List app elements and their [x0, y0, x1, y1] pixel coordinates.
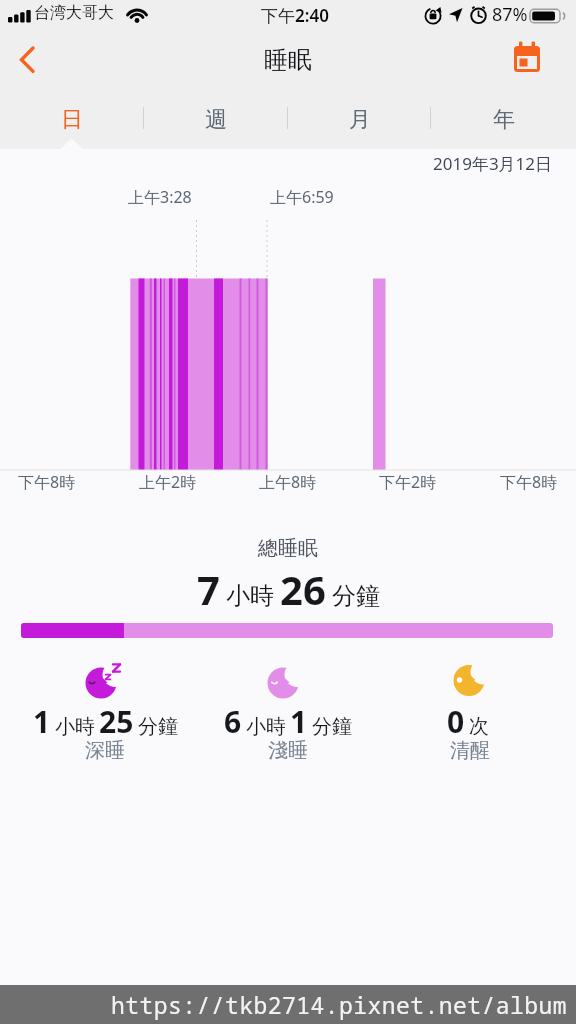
staticText: 次 [469, 714, 489, 739]
staticText: 下午2時 [379, 471, 437, 493]
button[interactable]: 週 [144, 100, 288, 140]
staticText: 分鐘 [138, 714, 178, 739]
staticText: 月 [349, 106, 371, 134]
staticText: 上午2時 [139, 471, 197, 493]
staticText: 26 [280, 562, 326, 612]
staticText: 2019年3月12日 [433, 152, 553, 175]
staticText: 台湾大哥大 [34, 3, 114, 23]
button[interactable] [8, 42, 44, 78]
staticText: 清醒 [450, 738, 490, 763]
button[interactable]: 月 [288, 100, 432, 140]
staticText: 深睡 [85, 738, 125, 763]
staticText: 總睡眠 [258, 536, 318, 561]
staticText: 87% [492, 2, 528, 27]
staticText: 年 [493, 106, 515, 134]
staticText: https://tkb2714.pixnet.net/album [111, 989, 567, 1020]
staticText: 0 [447, 701, 465, 742]
staticText: 上午3:28 [128, 186, 192, 208]
staticText: 小時 [55, 714, 95, 739]
staticText: 1 [290, 701, 308, 742]
staticText: 上午8時 [259, 471, 317, 493]
staticText: 日 [61, 106, 83, 134]
staticText: 25 [99, 701, 134, 742]
staticText: 週 [205, 106, 227, 134]
staticText: 分鐘 [312, 714, 352, 739]
staticText: 下午8時 [500, 471, 558, 493]
staticText: 上午6:59 [270, 186, 334, 208]
staticText: 睡眠 [264, 45, 312, 75]
button[interactable]: 日 [0, 100, 144, 140]
button[interactable]: 年 [432, 100, 576, 140]
staticText: 6 [224, 701, 242, 742]
staticText: 分鐘 [332, 581, 380, 611]
button[interactable] [506, 36, 550, 80]
staticText: 小時 [226, 581, 274, 611]
staticText: 淺睡 [268, 738, 308, 763]
staticText: 下午8時 [18, 471, 76, 493]
staticText: 下午2:40 [261, 4, 329, 27]
staticText: 7 [197, 562, 220, 612]
staticText: 1 [33, 701, 51, 742]
staticText: 小時 [246, 714, 286, 739]
